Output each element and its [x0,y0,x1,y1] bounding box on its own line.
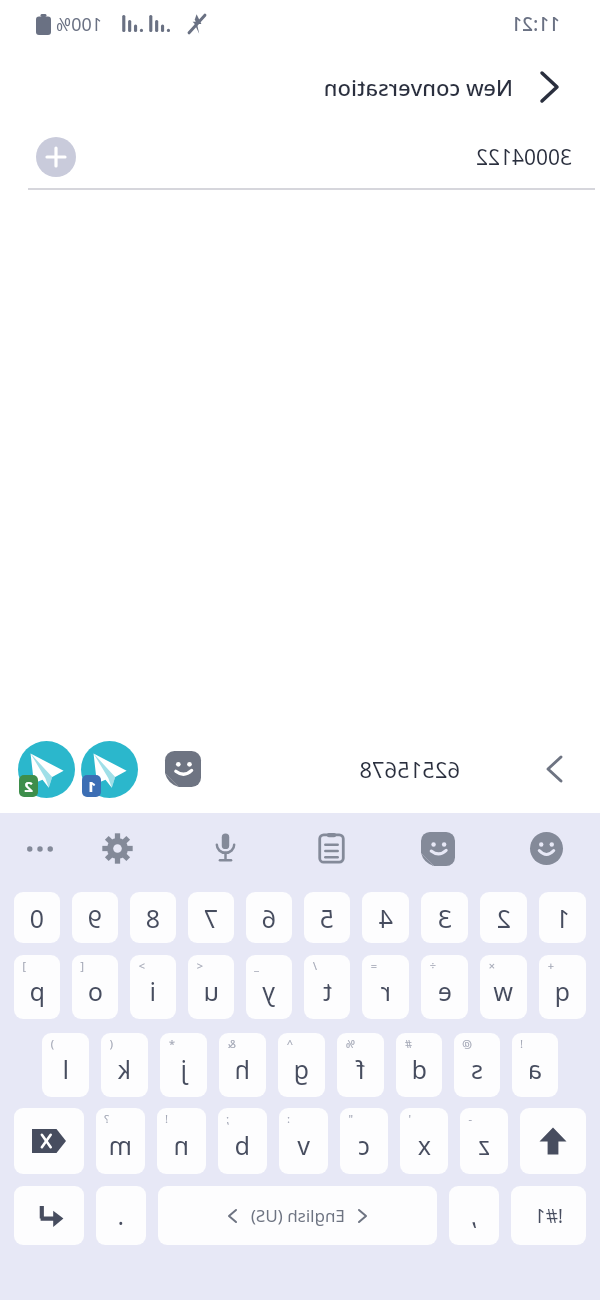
button[interactable]: < [188,955,234,1019]
button[interactable]: - [460,1108,508,1174]
staticText: w [493,974,513,1008]
button[interactable]: ? [96,1108,145,1174]
button[interactable] [530,832,563,865]
button[interactable]: : [279,1108,328,1174]
button[interactable]: 6 [246,892,292,943]
button[interactable]: ! [512,1033,558,1097]
staticText: , [470,1199,477,1232]
staticText: " [348,1111,353,1126]
button[interactable]: !#1 [511,1186,586,1245]
staticText: o [87,974,103,1008]
button[interactable] [101,832,134,865]
staticText: v [297,1128,310,1162]
staticText: a [527,1052,542,1086]
staticText: ) [50,1036,54,1051]
button[interactable]: ) [42,1033,89,1097]
button[interactable]: 1 [539,892,586,943]
staticText: ( [109,1036,113,1051]
button[interactable]: [ [72,955,118,1019]
button[interactable]: 5 [304,892,350,943]
button[interactable] [520,1108,586,1174]
button[interactable]: , [449,1186,499,1245]
button[interactable]: 4 [362,892,409,943]
staticText: g [293,1052,309,1086]
button[interactable]: ; [218,1108,267,1174]
button[interactable]: _ [246,955,292,1019]
button[interactable]: × [480,955,527,1019]
staticText: m [108,1128,132,1162]
staticText: r [380,974,391,1008]
button[interactable]: English (US) [158,1186,437,1245]
staticText: ; [226,1111,229,1126]
staticText: * [168,1036,175,1051]
staticText: n [173,1128,189,1162]
staticText: t [322,974,332,1008]
staticText: j [180,1052,187,1086]
staticText: English (US) [250,1204,345,1227]
staticText: f [356,1052,365,1086]
button[interactable]: 7 [188,892,234,943]
button[interactable]: 0 [14,892,60,943]
staticText: 30004122 [475,143,572,172]
button[interactable] [14,1186,84,1245]
button[interactable]: ^ [278,1033,325,1097]
button[interactable]: @ [454,1033,500,1097]
staticText: ^ [286,1036,293,1051]
button[interactable]: # [396,1033,442,1097]
button[interactable]: + [539,955,586,1019]
staticText: / [312,958,317,973]
staticText: 0 [29,901,44,935]
button[interactable]: 3 [421,892,468,943]
button[interactable] [540,754,570,784]
button[interactable]: % [337,1033,384,1097]
staticText: [ [80,958,84,973]
button[interactable] [36,137,76,177]
staticText: ÷ [429,958,436,973]
staticText: k [117,1052,131,1086]
staticText: 9 [87,901,102,935]
button[interactable]: ] [14,955,60,1019]
staticText: h [234,1052,250,1086]
button[interactable]: ( [101,1033,148,1097]
button[interactable]: & [219,1033,266,1097]
staticText: 2 [496,901,511,935]
staticText: 3 [437,901,452,935]
staticText: 6 [261,901,276,935]
staticText: @ [462,1036,472,1051]
button[interactable] [165,751,201,787]
staticText: b [234,1128,250,1162]
button[interactable] [24,833,56,865]
staticText: e [437,974,452,1008]
button[interactable]: 2 [480,892,527,943]
button[interactable]: 1 [81,741,138,798]
staticText: : [287,1111,290,1126]
staticText: 1 [87,776,96,796]
button[interactable]: " [340,1108,388,1174]
button[interactable]: > [130,955,176,1019]
button[interactable]: = [362,955,409,1019]
staticText: q [554,974,570,1008]
button[interactable]: ÷ [421,955,468,1019]
button[interactable] [421,832,455,866]
button[interactable]: 9 [72,892,118,943]
staticText: s [471,1052,483,1086]
staticText: < [196,958,203,973]
button[interactable]: ' [400,1108,448,1174]
button[interactable]: 2 [18,741,75,798]
staticText: 1 [555,901,570,935]
staticText: ? [104,1111,109,1126]
staticText: y [262,974,275,1008]
staticText: & [227,1036,236,1051]
button[interactable] [14,1108,84,1174]
staticText: ] [22,958,26,973]
staticText: 5 [319,901,334,935]
button[interactable]: / [304,955,350,1019]
button[interactable] [210,833,241,864]
button[interactable] [316,833,347,864]
button[interactable]: ! [157,1108,206,1174]
button[interactable]: . [96,1186,146,1245]
staticText: p [29,974,45,1008]
button[interactable] [530,67,570,107]
button[interactable]: * [160,1033,207,1097]
button[interactable]: 8 [130,892,176,943]
